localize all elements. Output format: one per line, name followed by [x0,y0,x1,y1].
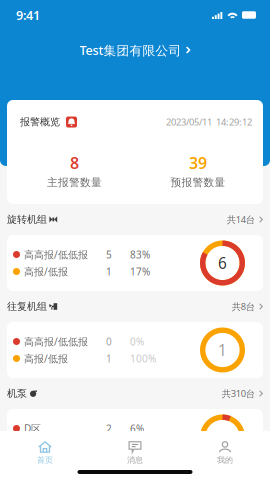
staticText: 高高报/低低报 [24,248,88,261]
staticText: 往复机组 [7,300,47,313]
staticText: 我的 [217,455,233,465]
staticText: 5 [106,248,112,261]
button[interactable]: 往复机组 [7,291,263,322]
staticText: 高高报/低低报 [24,335,88,348]
staticText: 高报/低报 [24,439,68,452]
staticText: 旋转机组 [7,213,47,226]
staticText: 39 [189,152,207,174]
staticText: 8 [70,152,79,174]
staticText: 0 [106,335,112,348]
staticText: 共310台 [222,387,255,400]
staticText: 预报警数量 [170,176,225,189]
staticText: 6% [130,422,144,435]
button[interactable]: 首页 [0,436,90,470]
staticText: 1 [218,340,227,360]
staticText: 1 [106,352,112,365]
staticText: 高报/低报 [24,265,68,278]
staticText: 9:41 [16,6,40,24]
staticText: 2023/05/11 14:29:12 [166,116,252,128]
staticText: 首页 [37,455,53,465]
button[interactable]: 机泵 [7,378,263,409]
staticText: 0% [130,335,144,348]
staticText: 17% [130,439,150,452]
staticText: D区 [24,422,41,435]
staticText: 报警概览 [20,116,60,128]
staticText: 17% [130,265,150,278]
staticText: 主报警数量 [47,176,102,189]
staticText: 消息 [127,455,143,465]
staticText: 共8台 [232,300,255,313]
button[interactable]: 我的 [180,436,270,470]
button[interactable]: 消息 [90,436,180,470]
staticText: Test集团有限公司 [79,41,181,59]
button[interactable]: Test集团有限公司 [0,30,270,70]
staticText: 共14台 [227,213,255,226]
button[interactable]: 旋转机组 [7,204,263,235]
staticText: 机泵 [7,387,27,400]
staticText: 83% [130,248,150,261]
staticText: 6 [218,253,227,273]
staticText: 2 [106,422,112,435]
staticText: 100% [130,352,156,365]
staticText: 1 [106,265,112,278]
staticText: 3 [218,427,227,447]
staticText: 高报/低报 [24,352,68,365]
